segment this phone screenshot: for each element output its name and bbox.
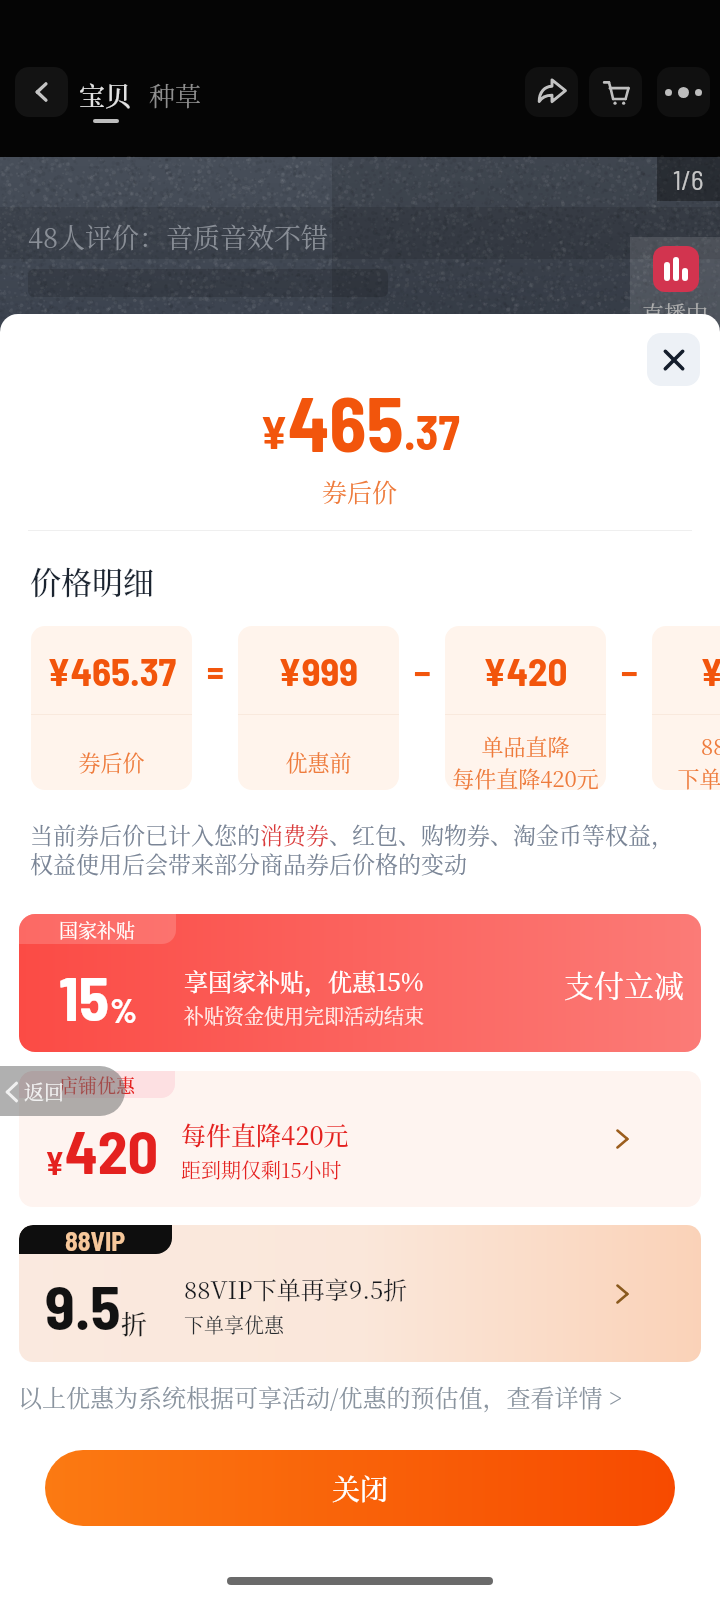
- staticText: 88VIP: [701, 730, 720, 762]
- staticText: .37: [404, 403, 460, 459]
- staticText: 补贴资金使用完即活动结束: [184, 1001, 424, 1030]
- button[interactable]: Share: [525, 67, 578, 117]
- staticText: 优惠前: [285, 746, 352, 778]
- staticText: 每件直降420元: [181, 1116, 349, 1152]
- staticText: 465: [288, 376, 404, 467]
- staticText: 种草: [149, 76, 202, 113]
- button[interactable]: More options: [657, 67, 710, 117]
- staticText: 48人评价：音质音效不错: [28, 217, 329, 256]
- button[interactable]: Close: [647, 333, 700, 386]
- staticText: 距到期仅剩15小时: [181, 1155, 342, 1184]
- staticText: 券后价: [78, 746, 145, 778]
- staticText: 单品直降: [481, 730, 570, 762]
- button[interactable]: Shopping cart: [589, 67, 642, 117]
- staticText: 1/6: [673, 163, 704, 195]
- staticText: 支付立减: [564, 962, 684, 1005]
- staticText: 420: [65, 1114, 159, 1186]
- button[interactable]: 关闭: [45, 1450, 675, 1526]
- button[interactable]: 宝贝: [79, 76, 132, 123]
- staticText: %: [110, 989, 138, 1030]
- staticText: ¥24: [700, 647, 720, 694]
- button[interactable]: 店铺优惠: [19, 1071, 701, 1207]
- staticText: 关闭: [332, 1468, 389, 1508]
- staticText: 券后价: [322, 473, 398, 509]
- staticText: ¥420: [483, 647, 568, 694]
- staticText: 国家补贴: [59, 916, 136, 943]
- staticText: 当前券后价已计入您的消费券、红包、购物券、淘金币等权益， 权益使用后会带来部分商…: [30, 818, 674, 880]
- staticText: 下单享优惠: [184, 1310, 284, 1339]
- button[interactable]: ¥24: [652, 626, 720, 790]
- button[interactable]: ¥999: [238, 626, 399, 790]
- staticText: 价格明细: [30, 558, 154, 603]
- staticText: 每件直降420元: [452, 762, 599, 790]
- staticText: −: [621, 649, 638, 692]
- button[interactable]: Back: [15, 67, 68, 117]
- staticText: 9.5: [45, 1268, 121, 1342]
- button[interactable]: 国家补贴: [19, 914, 701, 1052]
- staticText: 直播中: [642, 297, 709, 329]
- staticText: 返回: [24, 1077, 64, 1106]
- button[interactable]: ¥420: [445, 626, 606, 790]
- button[interactable]: Back: [0, 1066, 125, 1116]
- staticText: 折: [121, 1304, 148, 1341]
- staticText: ¥: [45, 1143, 65, 1181]
- staticText: 享国家补贴，优惠15%: [184, 963, 424, 997]
- button[interactable]: 以上优惠为系统根据可享活动/优惠的预估值，查看详情 >: [18, 1379, 623, 1413]
- staticText: ¥999: [278, 647, 359, 694]
- staticText: 15: [59, 959, 110, 1033]
- staticText: ¥: [260, 403, 288, 458]
- staticText: 宝贝: [79, 76, 132, 113]
- staticText: =: [207, 649, 224, 692]
- button[interactable]: 种草: [149, 76, 202, 113]
- staticText: 88VIP下单再享9.5折: [184, 1271, 408, 1305]
- button[interactable]: ¥465.37: [31, 626, 192, 790]
- button[interactable]: 88VIP: [19, 1225, 701, 1362]
- staticText: 下单享优惠: [677, 762, 720, 790]
- staticText: −: [414, 649, 431, 692]
- staticText: ¥465.37: [47, 647, 177, 694]
- staticText: 店铺优惠: [59, 1071, 136, 1098]
- staticText: 88VIP: [65, 1225, 126, 1254]
